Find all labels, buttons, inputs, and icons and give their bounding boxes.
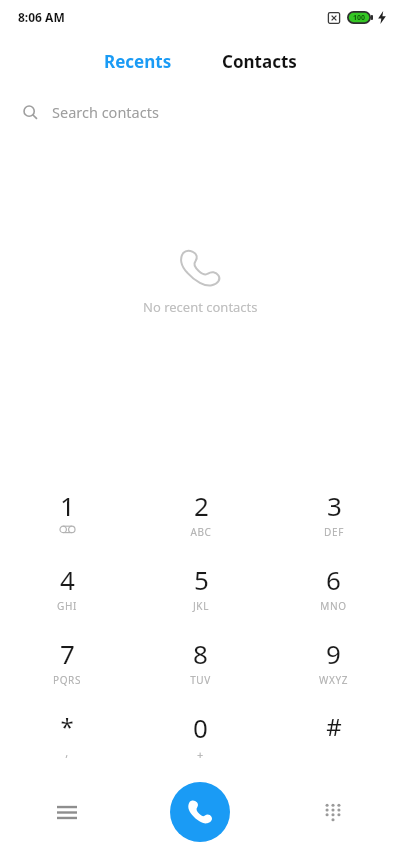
button[interactable]: Recents (90, 42, 186, 81)
button[interactable]: 5 (134, 562, 267, 636)
button[interactable]: * (0, 710, 134, 784)
staticText: WXYZ (319, 673, 348, 687)
button[interactable]: 2 (134, 488, 267, 562)
staticText: GHI (57, 599, 77, 613)
staticText: ABC (190, 525, 212, 539)
staticText: 7 (60, 636, 75, 671)
staticText: 4 (60, 562, 75, 597)
staticText: PQRS (53, 673, 81, 687)
button[interactable]: 3 (267, 488, 400, 562)
staticText: 6 (326, 562, 341, 597)
staticText: 100 (353, 13, 366, 23)
staticText: 8:06 AM (18, 9, 65, 25)
button[interactable]: Menu (43, 788, 91, 836)
button[interactable]: 7 (0, 636, 134, 710)
staticText: Recents (104, 50, 172, 73)
button[interactable]: 8 (134, 636, 267, 710)
staticText: , (65, 745, 69, 760)
staticText: 1 (60, 488, 75, 523)
staticText: Search contacts (52, 102, 159, 122)
staticText: 9 (326, 636, 341, 671)
staticText: 2 (194, 488, 209, 523)
staticText: No recent contacts (143, 298, 258, 316)
button[interactable]: 0 (134, 710, 267, 784)
staticText: # (326, 710, 342, 743)
button[interactable]: Contacts (208, 42, 311, 81)
staticText: 8 (193, 636, 208, 671)
button[interactable]: Dialpad (309, 788, 357, 836)
staticText: JKL (193, 599, 209, 613)
staticText: Contacts (222, 50, 297, 73)
staticText: TUV (190, 673, 211, 687)
button[interactable]: 1 (0, 488, 134, 562)
staticText: * (60, 710, 74, 743)
button[interactable]: # (267, 710, 400, 784)
button[interactable]: 6 (267, 562, 400, 636)
button[interactable]: Call (170, 782, 230, 842)
staticText: MNO (320, 599, 347, 613)
staticText: + (197, 747, 204, 762)
button[interactable]: Search contacts (0, 96, 400, 128)
button[interactable]: 4 (0, 562, 134, 636)
staticText: 0 (193, 710, 208, 745)
staticText: 3 (327, 488, 342, 523)
staticText: 5 (194, 562, 209, 597)
button[interactable]: 9 (267, 636, 400, 710)
staticText: DEF (324, 525, 344, 539)
